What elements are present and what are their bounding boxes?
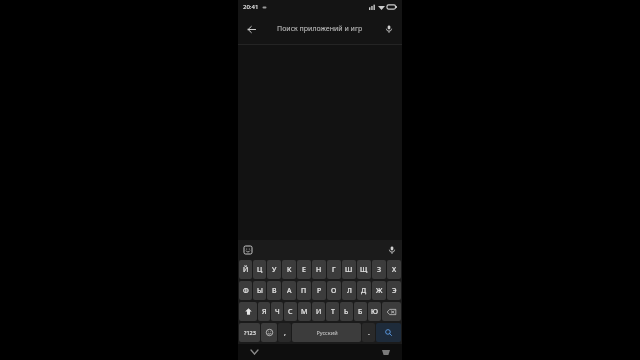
button[interactable]: Й — [239, 260, 252, 279]
button[interactable]: Х — [387, 260, 401, 279]
button[interactable]: И — [312, 302, 325, 321]
button[interactable]: В — [267, 281, 281, 300]
button[interactable]: Voice input — [385, 243, 399, 257]
button[interactable]: , — [278, 323, 291, 342]
button[interactable]: К — [282, 260, 296, 279]
staticText: Ф — [243, 286, 249, 296]
button[interactable]: Ц — [253, 260, 266, 279]
staticText: Ж — [376, 286, 383, 296]
button[interactable]: Ш — [342, 260, 356, 279]
button[interactable]: Shift — [239, 302, 257, 321]
staticText: К — [287, 265, 292, 275]
button[interactable]: Switch keyboard — [380, 346, 392, 358]
button[interactable]: Emoji — [261, 323, 277, 342]
button[interactable]: Symbols — [239, 323, 260, 342]
staticText: А — [287, 286, 292, 296]
staticText: 20:41 — [243, 3, 259, 11]
button[interactable]: Ы — [253, 281, 266, 300]
staticText: Ы — [257, 286, 263, 296]
staticText: Поиск приложений и игр — [277, 24, 363, 34]
staticText: Л — [347, 286, 352, 296]
button[interactable]: О — [327, 281, 341, 300]
staticText: И — [316, 307, 322, 317]
button[interactable]: Щ — [357, 260, 371, 279]
staticText: Х — [392, 265, 397, 275]
button[interactable]: Ф — [239, 281, 252, 300]
button[interactable]: Т — [326, 302, 339, 321]
staticText: О — [331, 286, 337, 296]
button[interactable]: С — [284, 302, 297, 321]
button[interactable]: Н — [312, 260, 326, 279]
button[interactable]: П — [297, 281, 311, 300]
staticText: Ш — [345, 265, 353, 275]
button[interactable]: Hide keyboard — [248, 346, 260, 358]
staticText: У — [272, 265, 277, 275]
button[interactable]: Б — [354, 302, 367, 321]
staticText: Ч — [275, 307, 280, 317]
button[interactable]: З — [372, 260, 386, 279]
staticText: Е — [302, 265, 306, 275]
staticText: М — [301, 307, 308, 317]
staticText: Г — [332, 265, 336, 275]
staticText: Б — [358, 307, 363, 317]
staticText: Т — [331, 307, 335, 317]
button[interactable]: Я — [258, 302, 270, 321]
button[interactable]: Г — [327, 260, 341, 279]
staticText: В — [272, 286, 277, 296]
staticText: Ю — [371, 307, 378, 317]
staticText: Н — [316, 265, 322, 275]
staticText: Я — [262, 307, 267, 317]
button[interactable]: А — [282, 281, 296, 300]
staticText: Ь — [344, 307, 349, 317]
button[interactable]: М — [298, 302, 311, 321]
button[interactable]: Back — [238, 16, 264, 42]
button[interactable]: Voice search — [376, 16, 402, 42]
button[interactable]: Ж — [372, 281, 386, 300]
staticText: Ц — [257, 265, 263, 275]
button[interactable]: Русский — [292, 323, 361, 342]
button[interactable]: Backspace — [382, 302, 401, 321]
staticText: П — [301, 286, 307, 296]
staticText: Щ — [360, 265, 368, 275]
staticText: Й — [243, 265, 249, 275]
button[interactable]: У — [267, 260, 281, 279]
staticText: Русский — [316, 329, 338, 336]
button[interactable]: Ю — [368, 302, 381, 321]
staticText: Д — [361, 286, 367, 296]
staticText: Р — [317, 286, 322, 296]
button[interactable]: Ч — [271, 302, 283, 321]
button[interactable]: Emoji — [241, 243, 255, 257]
staticText: С — [288, 307, 293, 317]
staticText: З — [377, 265, 382, 275]
staticText: Э — [392, 286, 397, 296]
button[interactable]: Л — [342, 281, 356, 300]
button[interactable]: Д — [357, 281, 371, 300]
button[interactable]: Е — [297, 260, 311, 279]
button[interactable]: . — [362, 323, 375, 342]
button[interactable]: Э — [387, 281, 401, 300]
staticText: . — [368, 328, 370, 338]
button[interactable]: Search — [376, 323, 401, 342]
staticText: , — [284, 328, 286, 338]
staticText: ?123 — [244, 329, 256, 336]
button[interactable]: Ь — [340, 302, 353, 321]
button[interactable]: Р — [312, 281, 326, 300]
